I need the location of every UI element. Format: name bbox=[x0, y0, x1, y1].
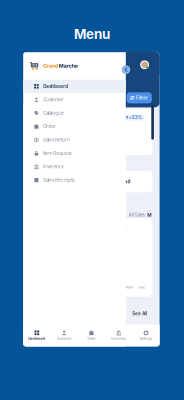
staticText: Grand bbox=[43, 63, 58, 69]
staticText: Marche bbox=[59, 63, 78, 69]
button[interactable]: Item Request bbox=[23, 147, 126, 160]
staticText: Customer bbox=[57, 337, 72, 341]
staticText: Filter bbox=[136, 95, 148, 101]
button[interactable]: Close menu bbox=[122, 65, 130, 74]
button[interactable]: Customer bbox=[23, 93, 126, 106]
button[interactable]: Sales Receipts bbox=[23, 173, 126, 187]
button[interactable]: Sales Return bbox=[23, 133, 126, 147]
button[interactable]: Order bbox=[78, 325, 105, 346]
button[interactable]: Grand bbox=[23, 52, 126, 80]
button[interactable]: Order bbox=[23, 120, 126, 133]
button[interactable]: Customer bbox=[50, 325, 78, 346]
button[interactable]: Catalogue bbox=[23, 106, 126, 120]
staticText: All Sales bbox=[129, 212, 145, 217]
staticText: Order bbox=[43, 124, 56, 129]
staticText: Inventory bbox=[111, 337, 126, 341]
staticText: Catalogue bbox=[43, 110, 64, 116]
button[interactable]: Filter bbox=[126, 92, 152, 103]
button[interactable]: Profile bbox=[140, 60, 149, 69]
staticText: Customer bbox=[43, 97, 64, 102]
button[interactable]: Inventory bbox=[105, 325, 132, 346]
staticText: Order bbox=[87, 337, 95, 341]
staticText: Nov bbox=[126, 285, 133, 289]
staticText: Ahmad bbox=[114, 179, 130, 184]
staticText: Settings bbox=[139, 337, 152, 341]
staticText: Inventory bbox=[43, 164, 63, 169]
button[interactable]: Inventory bbox=[23, 160, 126, 173]
staticText: Sales Return bbox=[43, 137, 70, 142]
button[interactable]: Dashboard bbox=[23, 325, 50, 346]
staticText: Dashboard bbox=[28, 337, 45, 340]
staticText: Dec bbox=[138, 285, 145, 289]
staticText: Item Request bbox=[43, 151, 71, 156]
button[interactable]: Dashboard bbox=[23, 80, 126, 93]
staticText: Dashboard bbox=[43, 84, 68, 89]
staticText: +23% bbox=[129, 115, 142, 120]
staticText: See All bbox=[132, 311, 147, 316]
staticText: Sales Receipts bbox=[43, 177, 74, 183]
staticText: Menu bbox=[74, 26, 110, 42]
button[interactable]: See All bbox=[128, 309, 151, 318]
button[interactable]: Settings bbox=[132, 325, 160, 346]
staticText: M bbox=[147, 212, 151, 218]
